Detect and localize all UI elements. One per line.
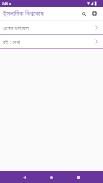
button[interactable]: Recents [70,171,86,183]
button[interactable]: বই : দেখা [0,35,103,48]
staticText: 2:46 [2,2,8,6]
button[interactable]: একের ভাগ্যফল [0,21,103,34]
button[interactable]: Back [16,171,32,183]
button[interactable]: Home [43,171,59,183]
button[interactable]: Settings [90,9,99,18]
staticText: ইসলামিক বিশ্বকোষ [3,9,79,19]
staticText: বই : দেখা [3,38,94,46]
staticText: একের ভাগ্যফল [3,24,94,32]
button[interactable]: Search [79,9,88,18]
